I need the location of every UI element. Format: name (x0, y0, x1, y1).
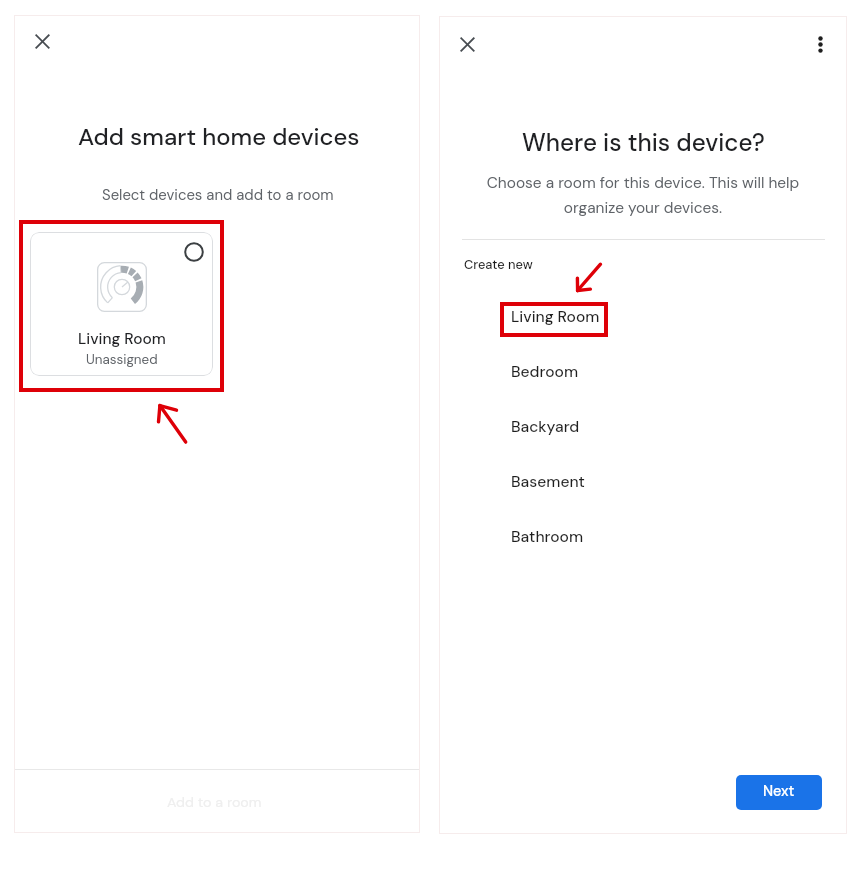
staticText: Bathroom (511, 527, 584, 547)
button[interactable]: Close (443, 20, 491, 68)
staticText: Create new (464, 256, 533, 273)
button[interactable]: Basement (511, 461, 803, 509)
staticText: Choose a room for this device. This will… (479, 173, 807, 217)
button[interactable]: Bathroom (511, 516, 803, 564)
button[interactable]: Living Room (511, 296, 803, 344)
staticText: Unassigned (86, 351, 158, 368)
button[interactable]: Create new (464, 253, 533, 275)
button[interactable]: Living Room (30, 232, 213, 376)
staticText: Basement (511, 472, 585, 492)
staticText: Add to a room (167, 793, 262, 812)
button[interactable]: Next (736, 775, 822, 810)
staticText: Living Room (78, 329, 166, 349)
staticText: Backyard (511, 417, 580, 437)
button[interactable]: Close (18, 17, 66, 65)
button[interactable]: More options (796, 20, 844, 68)
button[interactable]: Backyard (511, 406, 803, 454)
staticText: Add smart home devices (78, 121, 360, 152)
staticText: Where is this device? (522, 127, 765, 159)
staticText: Living Room (511, 307, 600, 327)
button[interactable]: Bedroom (511, 351, 803, 399)
staticText: Select devices and add to a room (102, 185, 334, 204)
staticText: Next (763, 782, 795, 801)
staticText: Bedroom (511, 362, 579, 382)
